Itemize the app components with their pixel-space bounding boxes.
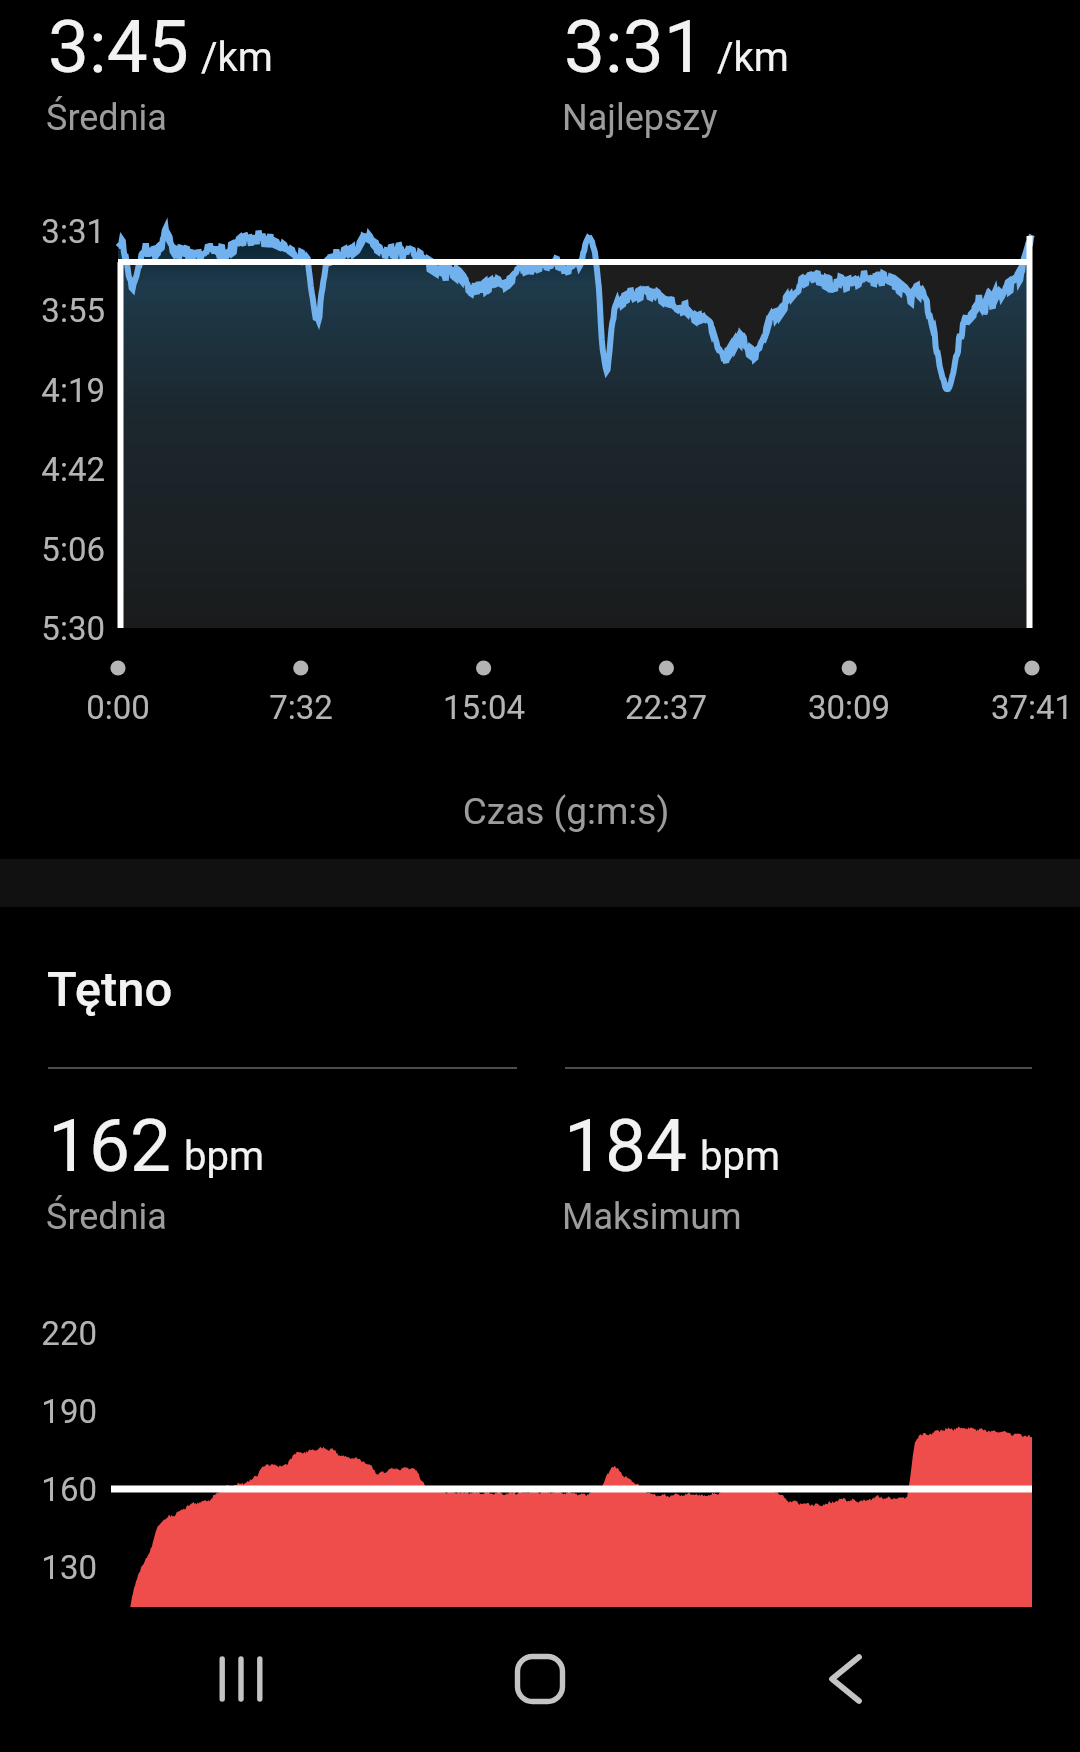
staticText: /km bbox=[201, 34, 273, 81]
staticText: 184 bbox=[564, 1103, 688, 1189]
staticText: 160 bbox=[9, 1470, 97, 1509]
staticText: bpm bbox=[184, 1133, 264, 1180]
staticText: 220 bbox=[9, 1314, 97, 1353]
staticText: 0:00 bbox=[28, 688, 208, 727]
staticText: 30:09 bbox=[759, 688, 939, 727]
staticText: 3:45 bbox=[48, 4, 189, 90]
staticText: 3:31 bbox=[14, 212, 105, 251]
staticText: 3:55 bbox=[14, 291, 105, 330]
staticText: 4:42 bbox=[14, 450, 105, 489]
staticText: Tętno bbox=[47, 961, 173, 1018]
staticText: 15:04 bbox=[394, 688, 574, 727]
staticText: 4:19 bbox=[14, 371, 105, 410]
staticText: Średnia bbox=[46, 1196, 167, 1238]
staticText: 130 bbox=[9, 1548, 97, 1587]
staticText: /km bbox=[717, 34, 789, 81]
staticText: 37:41 bbox=[942, 688, 1080, 727]
staticText: 162 bbox=[48, 1103, 172, 1189]
staticText: Średnia bbox=[46, 97, 167, 139]
staticText: Najlepszy bbox=[562, 97, 718, 139]
staticText: bpm bbox=[700, 1133, 780, 1180]
button[interactable]: Home bbox=[470, 1615, 610, 1743]
staticText: 190 bbox=[9, 1392, 97, 1431]
staticText: 5:30 bbox=[14, 609, 105, 648]
button[interactable]: Back bbox=[775, 1615, 915, 1743]
staticText: 7:32 bbox=[211, 688, 391, 727]
staticText: 3:31 bbox=[564, 4, 705, 90]
staticText: Maksimum bbox=[562, 1196, 742, 1238]
staticText: 5:06 bbox=[14, 530, 105, 569]
staticText: Czas (g:m:s) bbox=[26, 790, 1080, 833]
button[interactable]: Recent apps bbox=[171, 1615, 311, 1743]
staticText: 22:37 bbox=[576, 688, 756, 727]
